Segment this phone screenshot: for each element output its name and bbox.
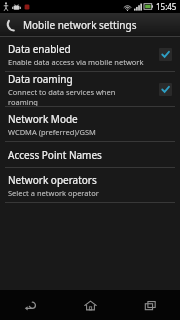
staticText: WCDMA (preferred)/GSM	[8, 127, 96, 137]
button[interactable]: Data enabled	[0, 37, 180, 71]
staticText: Access Point Names	[8, 148, 102, 162]
button[interactable]: Data roaming	[0, 72, 180, 106]
staticText: Network Mode	[8, 112, 78, 126]
staticText: 15:45	[156, 1, 177, 12]
button[interactable]: Access Point Names	[0, 142, 180, 167]
staticText: Enable data access via mobile network	[8, 57, 144, 67]
staticText: Select a network operator	[8, 188, 99, 198]
button[interactable]: Home	[60, 290, 120, 320]
staticText: Data roaming	[8, 72, 73, 86]
staticText: Mobile network settings	[23, 18, 137, 32]
button[interactable]: Network Mode	[0, 107, 180, 141]
button[interactable]: Toggle Data enabled	[159, 48, 172, 61]
staticText: Network operators	[8, 173, 97, 187]
staticText: Data enabled	[8, 42, 71, 56]
button[interactable]: Recent apps	[120, 290, 180, 320]
button[interactable]: Toggle Data roaming	[159, 83, 172, 96]
button[interactable]: Network operators	[0, 168, 180, 202]
button[interactable]: Back	[0, 290, 60, 320]
staticText: Connect to data services when roaming	[8, 87, 144, 106]
